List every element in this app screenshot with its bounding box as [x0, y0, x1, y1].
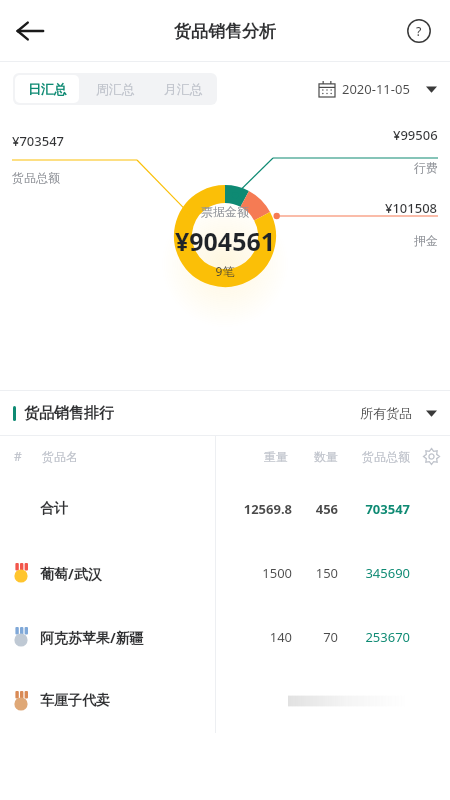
- button[interactable]: 所有货品: [360, 399, 437, 427]
- staticText: 456: [302, 500, 338, 518]
- staticText: 货品总额: [12, 170, 60, 185]
- staticText: 周汇总: [96, 81, 135, 97]
- button[interactable]: Settings: [418, 443, 444, 469]
- staticText: 押金: [414, 233, 438, 248]
- staticText: 阿克苏苹果/新疆: [40, 628, 144, 647]
- staticText: 日汇总: [28, 81, 67, 97]
- button[interactable]: 阿克苏苹果/新疆: [0, 605, 450, 669]
- staticText: ?: [416, 23, 422, 39]
- staticText: 葡萄/武汉: [40, 564, 102, 583]
- button[interactable]: 月汇总: [151, 75, 215, 103]
- button[interactable]: 周汇总: [83, 75, 147, 103]
- staticText: 货品总额: [348, 449, 410, 464]
- staticText: 行费: [414, 160, 438, 175]
- staticText: 140: [234, 628, 292, 646]
- staticText: 重量: [236, 449, 288, 464]
- button[interactable]: Back: [6, 7, 54, 55]
- staticText: 1500: [234, 564, 292, 582]
- staticText: ¥904561: [145, 224, 305, 258]
- staticText: ¥99506: [393, 126, 438, 144]
- staticText: 货品销售分析: [174, 21, 276, 42]
- staticText: 票据金额: [145, 204, 305, 219]
- staticText: 月汇总: [164, 81, 203, 97]
- staticText: ¥101508: [385, 199, 438, 217]
- staticText: 9笔: [145, 263, 305, 279]
- staticText: 150: [302, 564, 338, 582]
- button[interactable]: 2020-11-05: [319, 74, 437, 104]
- button[interactable]: 合计: [0, 477, 450, 541]
- button[interactable]: 车厘子代卖: [0, 669, 450, 733]
- staticText: 数量: [298, 449, 338, 464]
- staticText: 2020-11-05: [342, 80, 410, 98]
- staticText: 70: [302, 628, 338, 646]
- button[interactable]: Help: [398, 10, 440, 52]
- staticText: 345690: [348, 564, 410, 582]
- staticText: ¥703547: [12, 132, 65, 150]
- staticText: 703547: [348, 500, 410, 518]
- staticText: 货品名: [42, 449, 78, 464]
- staticText: 合计: [40, 500, 68, 518]
- staticText: 12569.8: [234, 500, 292, 518]
- staticText: 货品销售排行: [24, 404, 114, 423]
- staticText: 253670: [348, 628, 410, 646]
- button[interactable]: 葡萄/武汉: [0, 541, 450, 605]
- staticText: #: [14, 448, 22, 464]
- button[interactable]: 日汇总: [15, 75, 79, 103]
- staticText: 所有货品: [360, 405, 412, 421]
- staticText: 车厘子代卖: [40, 692, 110, 710]
